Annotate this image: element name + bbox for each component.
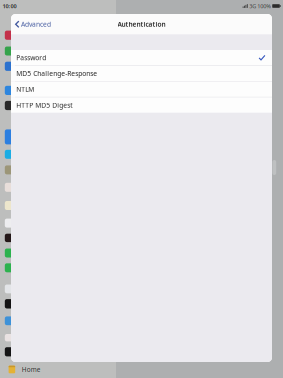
staticText: MD5 Challenge-Response: [16, 69, 97, 78]
staticText: HTTP MD5 Digest: [16, 100, 72, 110]
staticText: NTLM: [16, 85, 34, 94]
button[interactable]: Home: [0, 361, 116, 378]
button[interactable]: Advanced: [11, 14, 73, 34]
staticText: Password: [16, 53, 46, 62]
staticText: Authentication: [117, 20, 165, 29]
button[interactable]: HTTP MD5 Digest: [11, 97, 272, 113]
button[interactable]: MD5 Challenge-Response: [11, 66, 272, 81]
staticText: Home: [22, 365, 41, 374]
staticText: 100%: [256, 2, 271, 10]
staticText: 3G: [248, 2, 256, 10]
button[interactable]: Password: [11, 50, 272, 65]
staticText: 10:00: [3, 2, 17, 10]
staticText: Advanced: [21, 20, 51, 29]
button[interactable]: NTLM: [11, 82, 272, 97]
